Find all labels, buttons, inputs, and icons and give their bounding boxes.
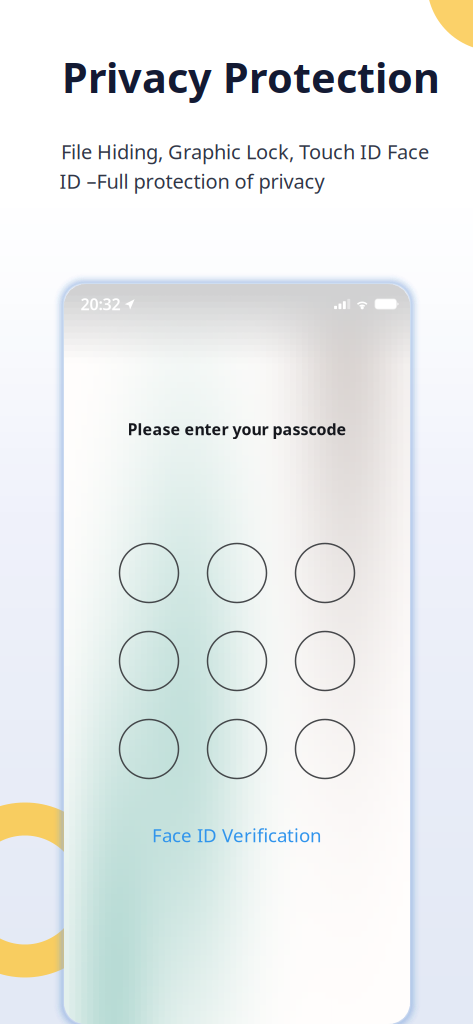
staticText: Privacy Protection [62, 50, 440, 104]
button[interactable]: Passcode dot [119, 719, 178, 778]
button[interactable]: Passcode dot [295, 719, 354, 778]
button[interactable]: Passcode dot [295, 543, 354, 602]
staticText: Face ID Verification [152, 823, 322, 847]
staticText: ID –Full protection of privacy [59, 168, 324, 194]
button[interactable]: Passcode dot [119, 543, 178, 602]
button[interactable]: Passcode dot [207, 543, 266, 602]
button[interactable]: Passcode dot [207, 631, 266, 690]
button[interactable]: Passcode dot [295, 631, 354, 690]
button[interactable]: Passcode dot [207, 719, 266, 778]
staticText: Please enter your passcode [127, 418, 346, 440]
staticText: File Hiding, Graphic Lock, Touch ID Face [61, 138, 429, 165]
button[interactable]: Face ID Verification [152, 823, 322, 847]
button[interactable]: Passcode dot [119, 631, 178, 690]
staticText: 20:32 [80, 293, 120, 315]
